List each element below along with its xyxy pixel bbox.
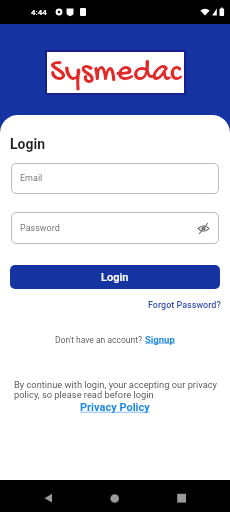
staticText: Privacy Policy <box>80 401 150 414</box>
staticText: Signup <box>145 334 175 345</box>
button[interactable]: Login <box>10 265 220 289</box>
button[interactable]: Email <box>11 163 219 194</box>
staticText: Password <box>20 223 60 234</box>
staticText: Email <box>20 173 43 184</box>
button[interactable]: Password <box>11 212 219 244</box>
button[interactable] <box>0 480 76 512</box>
staticText: Sysmedac <box>50 54 182 92</box>
staticText: Forgot Password? <box>148 300 221 311</box>
button[interactable]: Forgot Password? <box>148 300 221 311</box>
staticText: Don't have an account? <box>55 335 145 345</box>
staticText: Login <box>101 271 129 284</box>
button[interactable]: Signup <box>145 334 175 345</box>
staticText: 4:44 <box>31 8 47 17</box>
button[interactable] <box>76 480 153 512</box>
button[interactable]: Privacy Policy <box>80 401 150 414</box>
staticText: By continue with login, your accepting o… <box>14 379 218 401</box>
button[interactable] <box>153 480 230 512</box>
staticText: Login <box>10 136 46 152</box>
